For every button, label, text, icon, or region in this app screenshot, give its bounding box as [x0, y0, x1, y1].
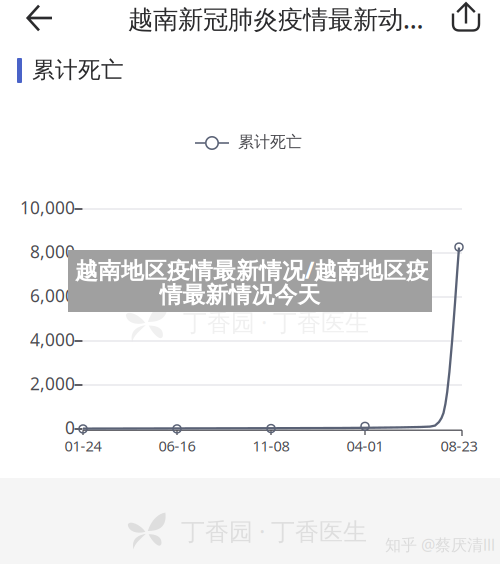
staticText: 0 — [65, 416, 75, 439]
staticText: 累计死亡 — [238, 132, 302, 152]
staticText: 08-23 — [440, 436, 477, 455]
staticText: 情最新情况今天 — [159, 281, 320, 309]
staticText: 累计死亡 — [32, 56, 124, 84]
staticText: 11-08 — [252, 436, 289, 455]
staticText: 8,000 — [30, 240, 75, 263]
staticText: 4,000 — [30, 328, 75, 351]
staticText: 2,000 — [30, 372, 75, 395]
staticText: 04-01 — [346, 436, 383, 455]
staticText: 越南新冠肺炎疫情最新动… — [128, 2, 424, 36]
button[interactable]: Share — [448, 1, 484, 33]
staticText: 6,000 — [30, 284, 75, 307]
staticText: 知乎 @蔡厌清lll — [385, 534, 495, 555]
staticText: 06-16 — [158, 436, 195, 455]
staticText: 丁香园 · 丁香医生 — [183, 306, 369, 338]
button[interactable]: Back — [14, 3, 66, 33]
staticText: 01-24 — [64, 436, 101, 455]
staticText: 越南地区疫情最新情况/越南地区疫 — [75, 255, 429, 285]
staticText: 丁香园 · 丁香医生 — [181, 515, 367, 547]
staticText: 10,000 — [20, 196, 75, 219]
